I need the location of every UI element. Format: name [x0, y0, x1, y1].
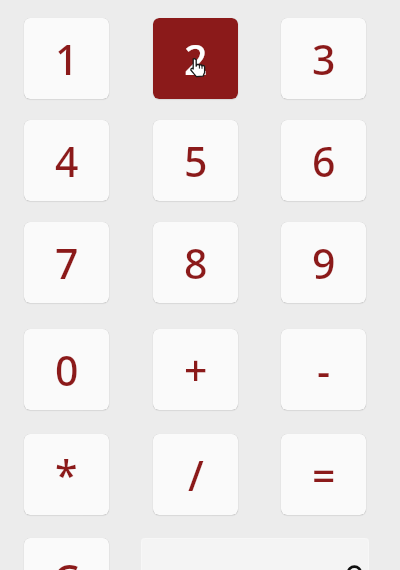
- staticText: 6: [312, 133, 336, 189]
- button[interactable]: 6: [281, 120, 366, 201]
- button[interactable]: =: [281, 434, 366, 515]
- button[interactable]: 8: [153, 222, 238, 303]
- staticText: 8: [184, 235, 208, 291]
- button[interactable]: +: [153, 329, 238, 410]
- staticText: -: [317, 342, 331, 398]
- staticText: 7: [55, 235, 79, 291]
- staticText: C: [53, 551, 80, 570]
- button[interactable]: 5: [153, 120, 238, 201]
- button[interactable]: -: [281, 329, 366, 410]
- staticText: 1: [55, 31, 79, 87]
- staticText: 2: [184, 31, 208, 87]
- button[interactable]: /: [153, 434, 238, 515]
- staticText: 3: [312, 31, 336, 87]
- staticText: 4: [55, 133, 79, 189]
- button[interactable]: C: [24, 538, 109, 570]
- button[interactable]: Result field: [141, 538, 369, 570]
- button[interactable]: *: [24, 434, 109, 515]
- staticText: =: [312, 447, 336, 503]
- staticText: +: [184, 342, 208, 398]
- button[interactable]: 0: [24, 329, 109, 410]
- button[interactable]: 3: [281, 18, 366, 99]
- other: Pointer: [190, 58, 208, 80]
- staticText: /: [188, 447, 204, 503]
- button[interactable]: 7: [24, 222, 109, 303]
- button[interactable]: 4: [24, 120, 109, 201]
- button[interactable]: 2: [153, 18, 238, 99]
- staticText: 9: [312, 235, 336, 291]
- staticText: 0: [55, 342, 79, 398]
- staticText: 5: [184, 133, 208, 189]
- staticText: *: [55, 447, 78, 503]
- button[interactable]: 9: [281, 222, 366, 303]
- button[interactable]: 1: [24, 18, 109, 99]
